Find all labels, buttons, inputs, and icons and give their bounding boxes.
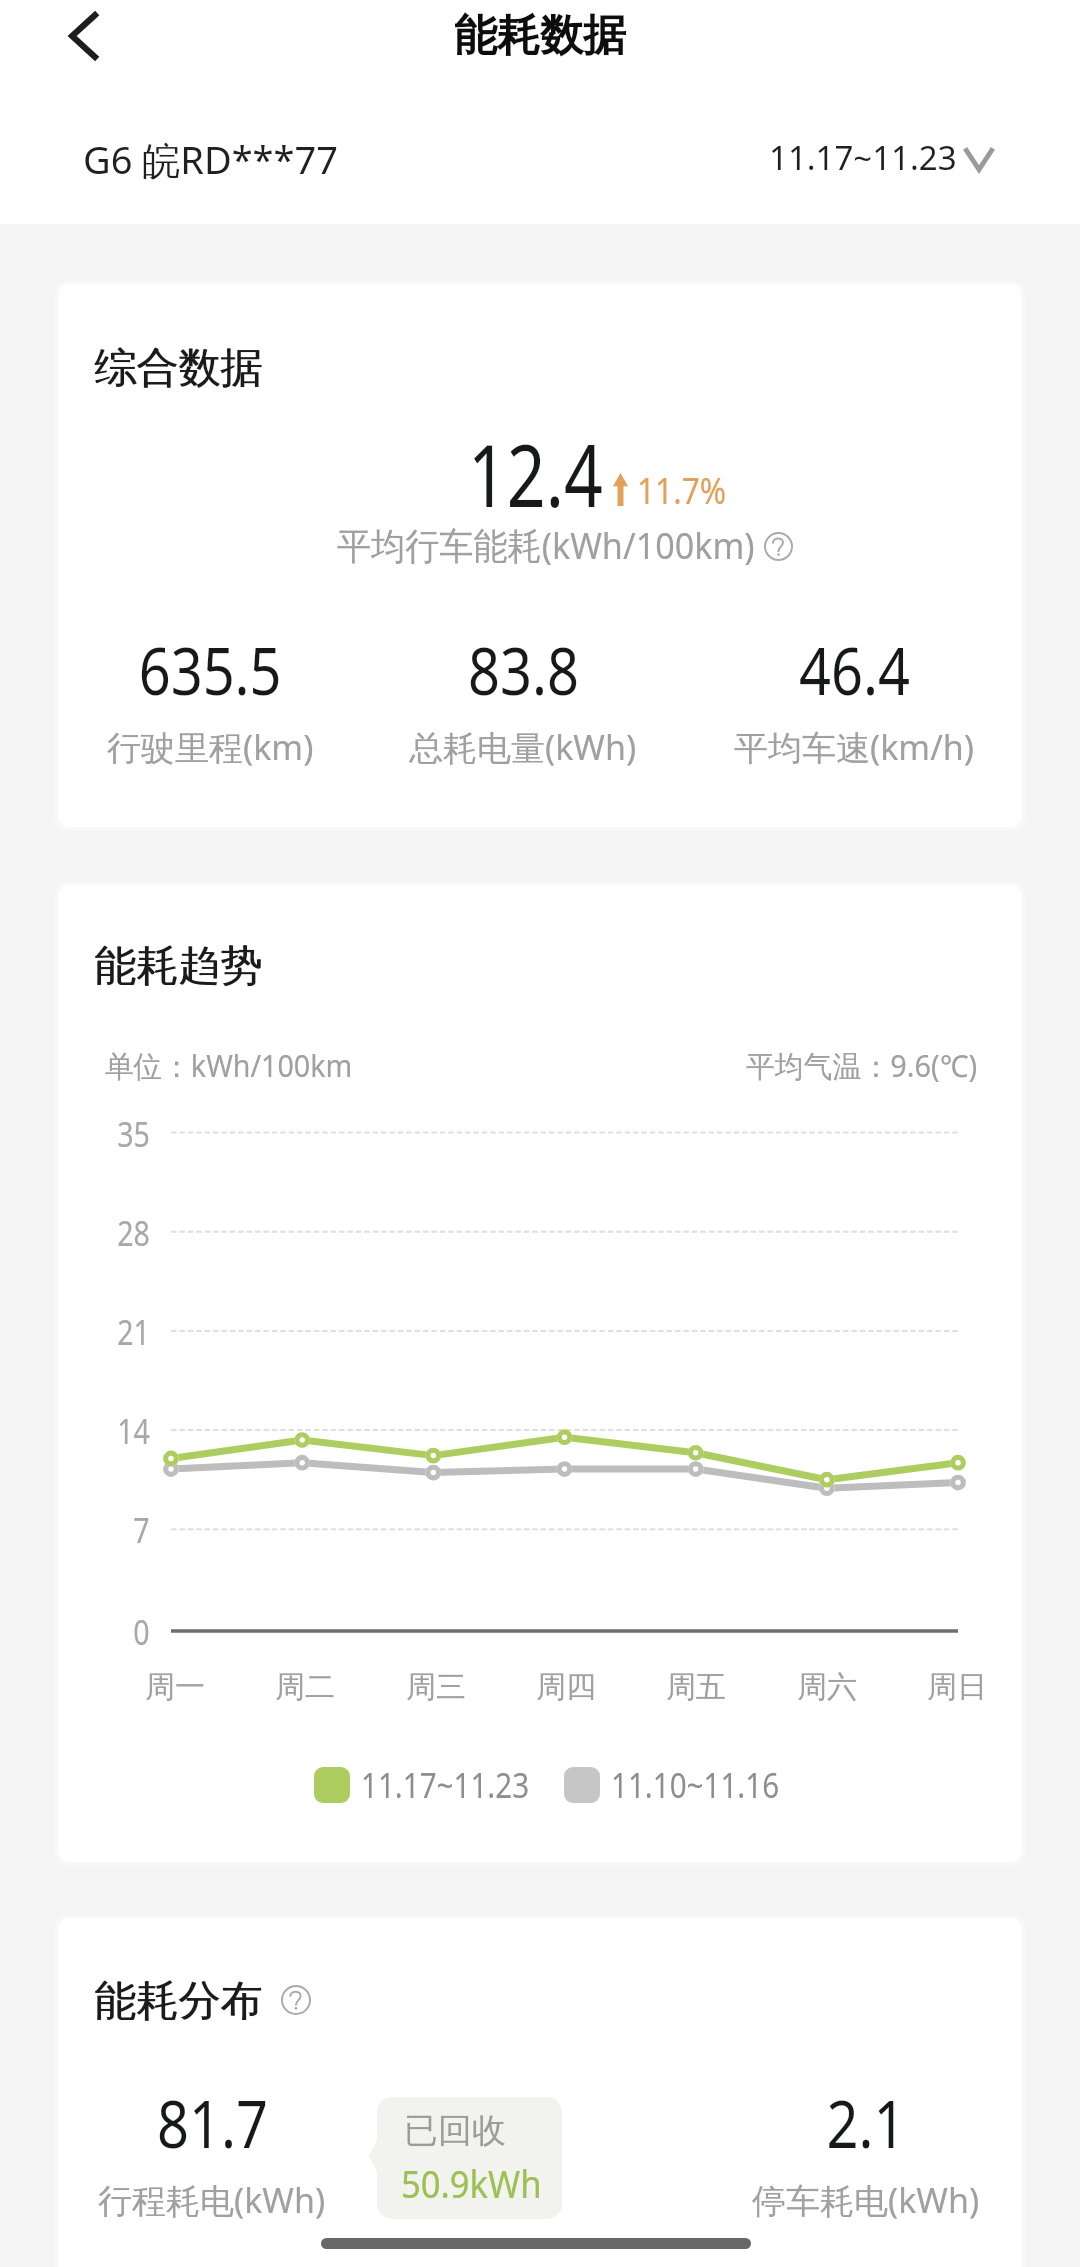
- button[interactable]: 11.10~11.16: [564, 1762, 805, 1808]
- staticText: 635.5: [139, 626, 282, 715]
- staticText: 81.7: [157, 2079, 268, 2168]
- button[interactable]: About energy distribution: [281, 1985, 311, 2015]
- staticText: 周六: [797, 1668, 857, 1706]
- staticText: 14: [117, 1408, 150, 1454]
- staticText: 11.7%: [637, 466, 727, 515]
- staticText: 能耗数据: [454, 9, 626, 63]
- staticText: 0: [133, 1609, 150, 1655]
- staticText: 83.8: [468, 626, 579, 715]
- staticText: 停车耗电(kWh): [752, 2177, 980, 2223]
- staticText: 能耗趋势: [94, 940, 262, 993]
- staticText: 35: [117, 1111, 150, 1157]
- staticText: 11.10~11.16: [611, 1762, 780, 1808]
- staticText: 2.1: [826, 2079, 905, 2168]
- staticText: 周日: [927, 1668, 987, 1706]
- staticText: 平均气温：9.6(℃): [746, 1045, 978, 1086]
- staticText: 28: [117, 1210, 150, 1256]
- staticText: 11.17~11.23: [769, 135, 957, 180]
- staticText: 周三: [406, 1668, 466, 1706]
- staticText: 总耗电量(kWh): [409, 724, 637, 770]
- staticText: G6 皖RD***77: [83, 133, 338, 185]
- staticText: 7: [133, 1507, 150, 1553]
- staticText: 已回收: [404, 2109, 506, 2152]
- staticText: 平均行车能耗(kWh/100km): [337, 519, 755, 570]
- staticText: 平均车速(km/h): [734, 724, 975, 770]
- staticText: 单位：kWh/100km: [105, 1045, 353, 1086]
- staticText: 50.9kWh: [401, 2157, 542, 2209]
- staticText: 能耗分布: [95, 1975, 263, 2028]
- staticText: 11.17~11.23: [361, 1762, 530, 1808]
- staticText: 行驶里程(km): [107, 724, 314, 770]
- staticText: 周一: [145, 1668, 205, 1706]
- button[interactable]: 11.17~11.23: [314, 1762, 555, 1808]
- staticText: 能耗分布: [94, 1975, 262, 2028]
- staticText: 周五: [666, 1668, 726, 1706]
- staticText: 能耗趋势: [95, 940, 263, 993]
- staticText: 21: [117, 1309, 150, 1355]
- staticText: 周二: [275, 1668, 335, 1706]
- staticText: 综合数据: [94, 342, 262, 395]
- staticText: 综合数据: [95, 342, 263, 395]
- staticText: 46.4: [799, 626, 910, 715]
- staticText: 12.4: [468, 415, 603, 532]
- staticText: 行程耗电(kWh): [98, 2177, 326, 2223]
- button[interactable]: 11.17~11.23: [769, 129, 994, 185]
- button[interactable]: Back: [23, 0, 143, 82]
- button[interactable]: About average driving energy consumption: [764, 532, 793, 561]
- staticText: 周四: [536, 1668, 596, 1706]
